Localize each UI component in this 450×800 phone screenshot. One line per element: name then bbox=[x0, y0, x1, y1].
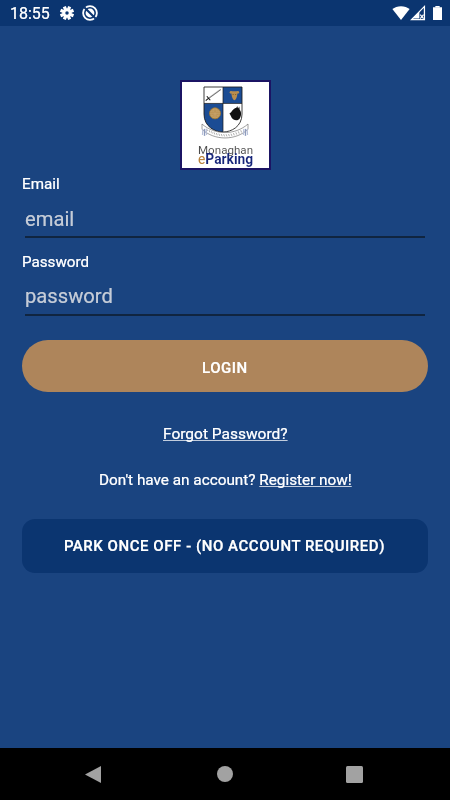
staticText: Email bbox=[22, 175, 60, 193]
staticText: Monaghan bbox=[198, 143, 254, 157]
button[interactable]: Home bbox=[199, 748, 251, 800]
staticText: email bbox=[25, 207, 75, 231]
button[interactable]: Recent apps bbox=[328, 748, 380, 800]
staticText: 18:55 bbox=[10, 4, 50, 23]
button[interactable]: LOGIN bbox=[22, 340, 428, 392]
staticText: eParking bbox=[198, 151, 254, 167]
staticText: Don't have an account? Register now! bbox=[99, 471, 352, 489]
button[interactable]: Forgot Password? bbox=[153, 421, 298, 447]
staticText: password bbox=[25, 284, 113, 308]
staticText: LOGIN bbox=[202, 359, 248, 377]
button[interactable]: Don't have an account? Register now! bbox=[91, 467, 360, 493]
button[interactable]: PARK ONCE OFF - (NO ACCOUNT REQUIRED) bbox=[22, 519, 428, 573]
staticText: Forgot Password? bbox=[163, 425, 288, 443]
staticText: Password bbox=[22, 253, 90, 271]
staticText: PARK ONCE OFF - (NO ACCOUNT REQUIRED) bbox=[64, 537, 386, 555]
button[interactable]: Back bbox=[67, 748, 119, 800]
